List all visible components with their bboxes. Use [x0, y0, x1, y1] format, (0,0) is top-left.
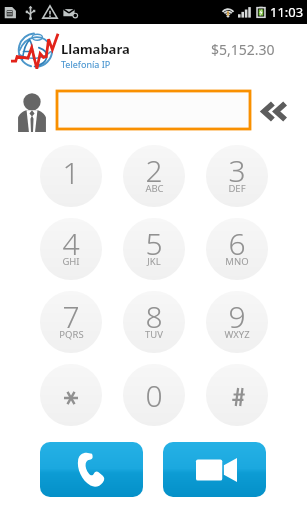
staticText: 7 — [62, 296, 80, 337]
staticText: 9 — [228, 296, 246, 337]
staticText: 8 — [145, 296, 163, 337]
staticText: 3 — [228, 150, 246, 191]
staticText: JKL — [147, 255, 161, 268]
button[interactable]: Call — [40, 442, 143, 497]
button[interactable] — [40, 364, 102, 426]
button[interactable]: 5 — [123, 218, 185, 280]
button[interactable]: 2 — [123, 145, 185, 207]
staticText: 2 — [145, 150, 163, 191]
staticText: PQRS — [59, 328, 84, 341]
staticText: 1 — [62, 152, 80, 193]
staticText: 0 — [145, 375, 163, 416]
staticText: Llamabara — [61, 40, 130, 58]
button[interactable]: 7 — [40, 291, 102, 353]
button[interactable]: Backspace — [250, 88, 307, 132]
button[interactable]: 6 — [206, 218, 268, 280]
staticText: GHI — [62, 255, 80, 268]
button[interactable]: 9 — [206, 291, 268, 353]
staticText: Telefonía IP — [61, 58, 111, 70]
staticText: $5,152.30 — [211, 40, 275, 59]
staticText: ABC — [145, 182, 164, 195]
staticText: MNO — [225, 255, 249, 268]
staticText: WXYZ — [224, 328, 250, 341]
staticText: 11:03 — [270, 3, 304, 21]
staticText: DEF — [228, 182, 246, 195]
button[interactable] — [57, 91, 250, 129]
staticText: TUV — [145, 328, 163, 341]
button[interactable]: 1 — [40, 145, 102, 207]
button[interactable]: 8 — [123, 291, 185, 353]
staticText: 5 — [145, 223, 163, 264]
staticText: 4 — [62, 223, 80, 264]
button[interactable]: 4 — [40, 218, 102, 280]
button[interactable] — [206, 364, 268, 426]
button[interactable]: 3 — [206, 145, 268, 207]
staticText: 6 — [228, 223, 246, 264]
button[interactable]: 0 — [123, 364, 185, 426]
button[interactable]: Video call — [163, 442, 266, 497]
button[interactable]: Contacts — [0, 88, 57, 132]
